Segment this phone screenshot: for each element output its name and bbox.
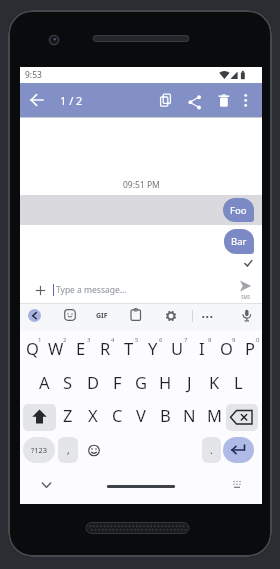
staticText: U — [171, 337, 184, 359]
button[interactable]: I — [190, 335, 214, 361]
button[interactable]: , — [58, 437, 78, 463]
staticText: A — [39, 371, 50, 393]
staticText: , — [67, 443, 70, 457]
staticText: K — [209, 371, 220, 393]
staticText: SMS — [241, 294, 251, 300]
button[interactable]: V — [129, 402, 153, 428]
staticText: Bar — [231, 235, 247, 248]
button[interactable]: Type a message... — [20, 276, 262, 304]
staticText: O — [220, 337, 233, 359]
button[interactable] — [165, 310, 177, 322]
staticText: N — [183, 404, 196, 426]
button[interactable]: S — [56, 369, 80, 395]
button[interactable]: D — [81, 369, 105, 395]
staticText: R — [100, 337, 111, 359]
button[interactable] — [214, 91, 234, 111]
staticText: . — [210, 443, 213, 457]
staticText: I — [199, 337, 205, 359]
staticText: 09:51 PM — [123, 179, 160, 191]
staticText: G — [135, 371, 148, 393]
button[interactable] — [80, 437, 108, 463]
staticText: C — [112, 404, 123, 426]
staticText: ?123 — [31, 445, 48, 455]
staticText: E — [76, 337, 86, 359]
button[interactable]: W — [44, 335, 68, 361]
button[interactable]: A — [32, 369, 56, 395]
button[interactable]: E — [69, 335, 93, 361]
staticText: 6 — [159, 336, 163, 343]
button[interactable]: R — [93, 335, 117, 361]
staticText: W — [48, 337, 64, 359]
staticText: H — [159, 371, 172, 393]
staticText: 9 — [232, 336, 236, 343]
staticText: 7 — [184, 336, 188, 343]
button[interactable]: O — [214, 335, 238, 361]
button[interactable] — [23, 404, 56, 431]
button[interactable] — [28, 309, 41, 322]
button[interactable] — [241, 309, 253, 323]
button[interactable]: L — [226, 369, 250, 395]
button[interactable]: Y — [141, 335, 165, 361]
button[interactable]: U — [165, 335, 189, 361]
staticText: L — [234, 371, 243, 393]
button[interactable] — [27, 90, 47, 110]
staticText: F — [113, 371, 122, 393]
staticText: 3 — [87, 336, 91, 343]
staticText: 0 — [256, 336, 260, 343]
staticText: X — [88, 404, 98, 426]
staticText: M — [207, 404, 222, 426]
staticText: T — [124, 337, 134, 359]
button[interactable]: Foo — [223, 198, 254, 222]
staticText: 4 — [111, 336, 115, 343]
button[interactable] — [64, 309, 76, 321]
button[interactable]: C — [105, 402, 129, 428]
staticText: GIF — [96, 311, 108, 321]
button[interactable]: X — [81, 402, 105, 428]
button[interactable]: Bar — [224, 229, 254, 254]
button[interactable] — [156, 91, 176, 111]
button[interactable]: ?123 — [23, 437, 55, 463]
staticText: 9:53 — [25, 69, 42, 81]
button[interactable] — [238, 90, 254, 110]
button[interactable]: Z — [56, 402, 80, 428]
button[interactable] — [223, 437, 254, 463]
button[interactable]: J — [177, 369, 201, 395]
staticText: Z — [63, 404, 73, 426]
button[interactable] — [225, 474, 250, 496]
button[interactable]: G — [129, 369, 153, 395]
button[interactable]: T — [117, 335, 141, 361]
staticText: V — [136, 404, 146, 426]
button[interactable]: M — [202, 402, 226, 428]
staticText: P — [245, 337, 255, 359]
staticText: 5 — [135, 336, 139, 343]
button[interactable]: GIF — [93, 309, 110, 322]
button[interactable] — [34, 474, 59, 496]
staticText: B — [160, 404, 171, 426]
button[interactable] — [199, 310, 216, 323]
staticText: 1 / 2 — [60, 93, 83, 108]
button[interactable]: N — [177, 402, 201, 428]
staticText: 8 — [208, 336, 212, 343]
button[interactable]: K — [202, 369, 226, 395]
button[interactable]: P — [238, 335, 262, 361]
button[interactable] — [226, 404, 258, 431]
staticText: Foo — [230, 204, 247, 217]
button[interactable]: Q — [20, 335, 44, 361]
button[interactable]: . — [202, 437, 221, 463]
button[interactable] — [130, 308, 142, 321]
staticText: S — [63, 371, 73, 393]
button[interactable] — [185, 91, 205, 111]
staticText: 2 — [63, 336, 67, 343]
button[interactable]: B — [153, 402, 177, 428]
staticText: D — [87, 371, 100, 393]
staticText: Type a message... — [56, 284, 127, 296]
button[interactable]: F — [105, 369, 129, 395]
staticText: J — [187, 371, 192, 393]
staticText: 1 — [38, 336, 42, 343]
button[interactable]: H — [153, 369, 177, 395]
staticText: Y — [148, 337, 158, 359]
staticText: Q — [26, 337, 39, 359]
